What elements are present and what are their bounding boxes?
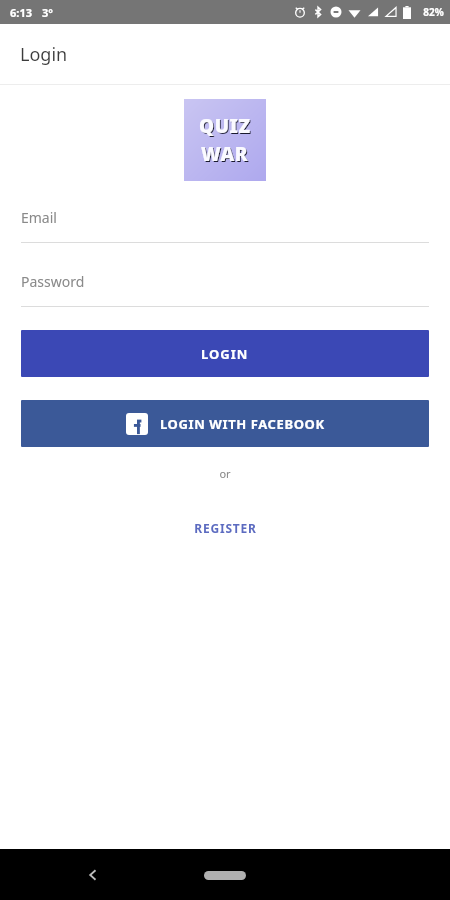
button[interactable]: Password <box>21 272 429 307</box>
button[interactable]: Back <box>78 860 108 890</box>
button[interactable]: LOGIN WITH FACEBOOK <box>21 400 429 447</box>
staticText: Login <box>20 42 68 67</box>
button[interactable]: LOGIN <box>21 330 429 377</box>
staticText: LOGIN WITH FACEBOOK <box>160 415 325 433</box>
staticText: WAR <box>201 141 249 167</box>
staticText: Password <box>21 272 85 291</box>
staticText: 3° <box>42 5 53 20</box>
staticText: 6:13 <box>10 5 32 20</box>
button[interactable]: REGISTER <box>178 514 273 542</box>
staticText: LOGIN <box>201 345 249 363</box>
button[interactable]: Home <box>197 862 253 888</box>
staticText: Email <box>21 208 57 227</box>
staticText: QUIZ <box>200 114 252 140</box>
staticText: REGISTER <box>194 520 257 536</box>
button[interactable]: Email <box>21 208 429 243</box>
staticText: QUIZ <box>199 113 251 139</box>
staticText: or <box>219 466 231 481</box>
staticText: WAR <box>202 142 250 168</box>
staticText: 82% <box>423 5 444 19</box>
